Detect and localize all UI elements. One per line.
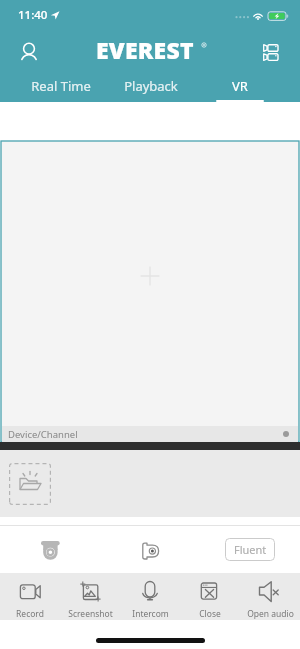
staticText: Open audio [247, 608, 294, 620]
button[interactable]: Close [180, 573, 240, 620]
button[interactable]: Record [0, 573, 60, 620]
staticText: Record [16, 608, 44, 620]
button[interactable]: Device list [251, 31, 291, 73]
staticText: Screenshot [68, 608, 113, 620]
staticText: Device/Channel [8, 428, 78, 441]
button[interactable]: Screenshot [60, 573, 120, 620]
button[interactable]: Lens [130, 530, 170, 570]
staticText: 11:40 [18, 7, 48, 23]
button[interactable]: Add device [9, 463, 51, 505]
staticText: EVEREST [96, 34, 194, 65]
staticText: Playback [124, 77, 178, 95]
button[interactable]: VR [195, 72, 284, 102]
button[interactable]: Fluent [225, 538, 275, 561]
button[interactable]: Open audio [240, 573, 300, 620]
button[interactable]: PTZ control [30, 530, 70, 570]
staticText: Close [199, 608, 221, 620]
button[interactable]: Playback [106, 72, 195, 102]
button[interactable]: Account [7, 30, 51, 72]
staticText: Intercom [132, 608, 169, 620]
staticText: Real Time [31, 77, 91, 95]
button[interactable]: Real Time [16, 72, 106, 102]
staticText: Fluent [234, 542, 267, 557]
staticText: VR [232, 77, 248, 95]
button[interactable]: Intercom [120, 573, 180, 620]
